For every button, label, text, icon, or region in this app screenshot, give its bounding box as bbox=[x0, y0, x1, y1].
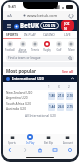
button[interactable]: Forward bbox=[22, 147, 28, 153]
button[interactable]: More bbox=[65, 39, 77, 53]
staticText: 2.75 bbox=[67, 105, 73, 109]
staticText: 2.10 bbox=[67, 94, 73, 98]
button[interactable]: Back bbox=[7, 147, 13, 153]
staticText: More bbox=[68, 48, 75, 52]
button[interactable]: BetUK bbox=[14, 22, 40, 30]
button[interactable]: 2.10 bbox=[66, 92, 73, 100]
button[interactable]: LIVE bbox=[58, 31, 77, 38]
staticText: 21.0 bbox=[58, 94, 64, 98]
button[interactable]: Share bbox=[37, 147, 43, 153]
staticText: JOIN bbox=[64, 21, 71, 30]
staticText: New Zealand U20 bbox=[6, 91, 33, 95]
staticText: Football bbox=[5, 48, 15, 52]
staticText: X bbox=[58, 85, 60, 89]
button[interactable]: SPORTS bbox=[3, 31, 21, 38]
staticText: 1 bbox=[48, 85, 50, 89]
button[interactable]: Football bbox=[3, 39, 16, 53]
staticText: All International U20 bbox=[25, 114, 56, 118]
button[interactable]: Tennis bbox=[29, 39, 41, 53]
button[interactable]: LOG IN bbox=[40, 22, 59, 29]
staticText: aA bbox=[7, 13, 12, 18]
staticText: South Africa U20 bbox=[6, 102, 31, 106]
staticText: Tennis bbox=[31, 48, 39, 52]
staticText: 1.80 bbox=[49, 94, 55, 98]
staticText: Bet Slip bbox=[44, 141, 54, 145]
other: Collapse bbox=[71, 77, 74, 80]
button[interactable]: 2.75 bbox=[66, 103, 73, 111]
staticText: Find a team or league bbox=[8, 56, 41, 60]
button[interactable]: 21.0 bbox=[57, 92, 64, 100]
staticText: CASINO bbox=[43, 33, 55, 37]
staticText: 9:41 bbox=[8, 4, 16, 9]
button[interactable]: 1.80 bbox=[48, 92, 55, 100]
staticText: www.betuk.com bbox=[27, 13, 58, 18]
staticText: Australia U20 bbox=[6, 107, 26, 111]
staticText: Most popular bbox=[6, 68, 36, 74]
button[interactable]: All International U20 bbox=[3, 112, 77, 119]
staticText: LIVE bbox=[64, 33, 71, 37]
staticText: Horse Racing bbox=[18, 48, 27, 53]
button[interactable]: Menu bbox=[6, 23, 12, 29]
button[interactable]: Golf bbox=[53, 39, 65, 53]
staticText: IN-PLAY bbox=[24, 33, 36, 37]
button[interactable]: CASINO bbox=[39, 31, 58, 38]
button[interactable]: JOIN bbox=[61, 20, 74, 31]
staticText: 2 bbox=[68, 85, 70, 89]
button[interactable]: Rugby bbox=[41, 39, 53, 53]
staticText: Account bbox=[63, 141, 73, 145]
staticText: Rugby bbox=[43, 48, 51, 52]
button[interactable]: 1.44 bbox=[48, 103, 55, 111]
staticText: Argentina U20 bbox=[6, 96, 28, 100]
staticText: LOG IN bbox=[43, 23, 56, 28]
staticText: BetUK bbox=[20, 22, 40, 30]
staticText: 26.0 bbox=[58, 105, 64, 109]
staticText: See all bbox=[62, 69, 74, 74]
button[interactable]: International U20 bbox=[6, 75, 74, 82]
button[interactable]: 26.0 bbox=[57, 103, 64, 111]
button[interactable]: Bookmarks bbox=[52, 147, 58, 153]
staticText: Sports bbox=[8, 141, 16, 145]
staticText: Golf bbox=[56, 48, 62, 52]
staticText: 1.44 bbox=[49, 105, 55, 109]
button[interactable]: In-Play bbox=[21, 134, 39, 145]
staticText: SPORTS bbox=[6, 33, 18, 37]
button[interactable]: Find a team or league bbox=[6, 55, 74, 61]
staticText: In-Play bbox=[26, 141, 35, 145]
button[interactable]: Tabs bbox=[67, 147, 73, 153]
button[interactable]: Horse Racing bbox=[16, 39, 29, 53]
button[interactable]: See all bbox=[62, 69, 74, 74]
button[interactable]: IN-PLAY bbox=[21, 31, 39, 38]
staticText: International U20 bbox=[12, 76, 44, 81]
button[interactable]: Sports bbox=[3, 134, 21, 145]
button[interactable]: Bet Slip bbox=[39, 134, 58, 145]
button[interactable]: Account bbox=[58, 134, 77, 145]
